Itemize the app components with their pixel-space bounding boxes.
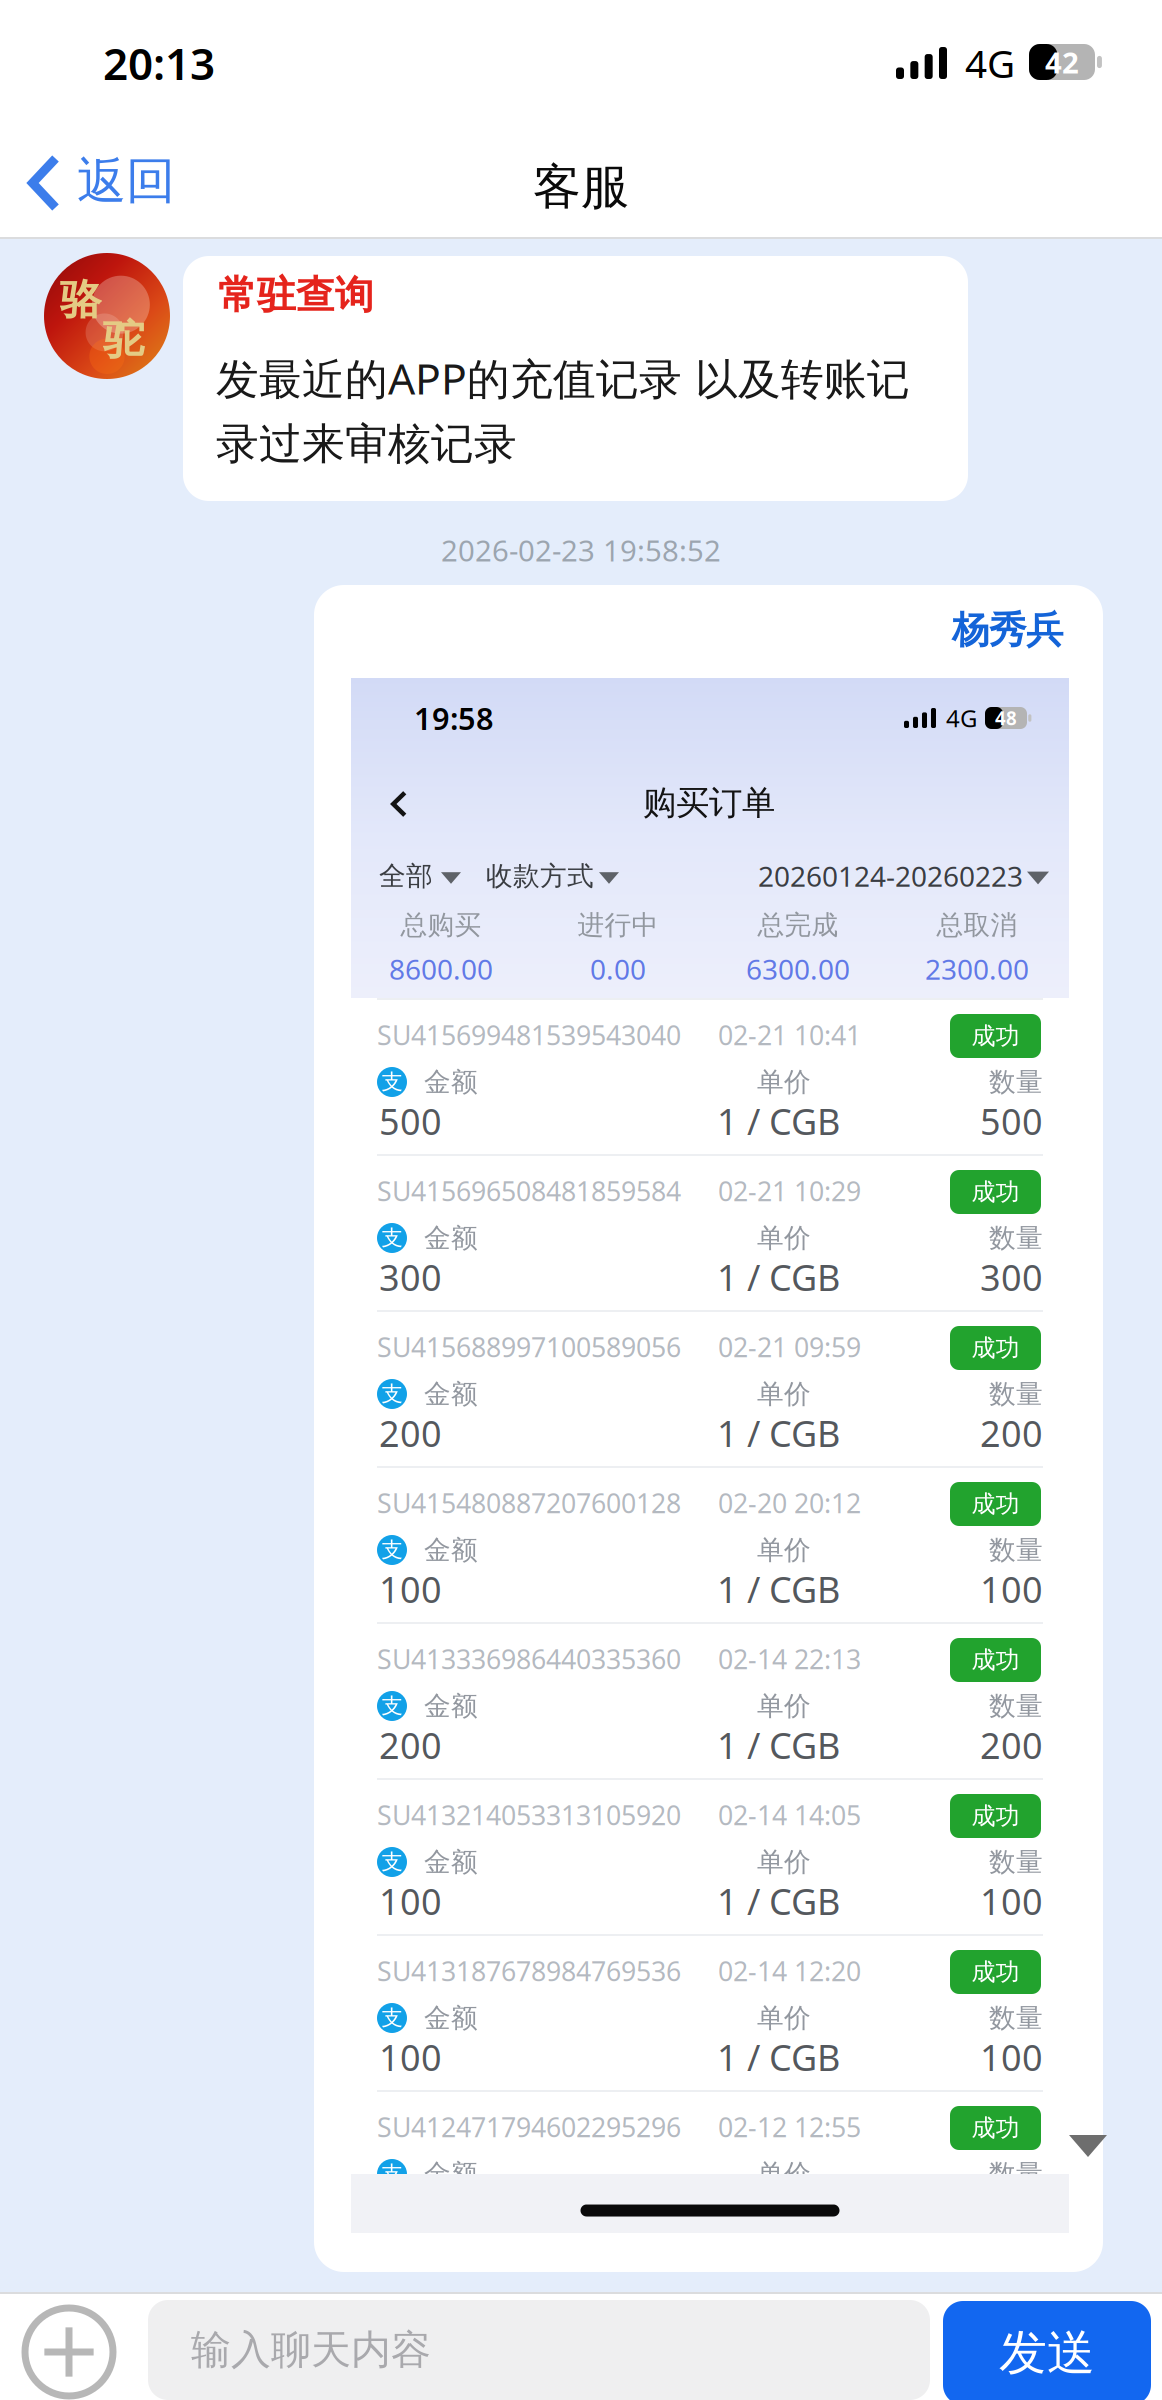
staticText: 数量 xyxy=(989,1378,1043,1410)
staticText: 02-14 12:20 xyxy=(718,1953,861,1989)
staticText: 300 xyxy=(379,1253,442,1301)
staticText: 100 xyxy=(980,2033,1043,2081)
staticText: 数量 xyxy=(989,1534,1043,1566)
staticText: SU415699481539543040 xyxy=(377,1017,681,1053)
staticText: 成功 xyxy=(971,2113,1019,2143)
staticText: 500 xyxy=(980,1097,1043,1145)
staticText: 金额 xyxy=(424,2002,478,2034)
staticText: 单价 xyxy=(757,1690,811,1722)
staticText: 02-12 12:55 xyxy=(718,2109,861,2145)
staticText: 100 xyxy=(379,1877,442,1925)
staticText: 金额 xyxy=(424,2158,478,2190)
staticText: 0.00 xyxy=(590,950,646,988)
staticText: 02-14 14:05 xyxy=(718,1797,861,1833)
staticText: 支 xyxy=(381,1537,402,1563)
staticText: 返回 xyxy=(77,151,175,211)
staticText: 20:13 xyxy=(103,34,215,92)
staticText: 成功 xyxy=(971,1021,1019,1051)
staticText: SU415696508481859584 xyxy=(377,1173,681,1209)
staticText: 48 xyxy=(995,706,1017,730)
staticText: 支 xyxy=(381,2161,402,2187)
staticText: 支 xyxy=(381,2005,402,2031)
staticText: 300 xyxy=(980,1253,1043,1301)
staticText: 数量 xyxy=(989,1690,1043,1722)
staticText: 发送 xyxy=(999,2323,1095,2382)
staticText: 金额 xyxy=(424,1846,478,1878)
button[interactable]: 发送 xyxy=(943,2301,1151,2400)
button[interactable]: 输入聊天内容 xyxy=(148,2300,930,2400)
staticText: 数量 xyxy=(989,2002,1043,2034)
staticText: 02-20 20:12 xyxy=(718,1485,861,1521)
button[interactable]: More xyxy=(9,2292,129,2400)
staticText: 20260124-20260223 xyxy=(758,857,1023,895)
staticText: 1 / CGB xyxy=(717,1097,840,1145)
staticText: 1 / CGB xyxy=(717,1253,840,1301)
staticText: 4G xyxy=(946,702,977,734)
staticText: 100 xyxy=(379,1565,442,1613)
staticText: 数量 xyxy=(989,1066,1043,1098)
staticText: 成功 xyxy=(971,1801,1019,1831)
staticText: 6300.00 xyxy=(746,950,850,988)
staticText: 数量 xyxy=(989,1222,1043,1254)
staticText: 1 / CGB xyxy=(717,1409,840,1457)
staticText: 4G xyxy=(965,37,1015,89)
staticText: 2026-02-23 19:58:52 xyxy=(441,530,721,569)
staticText: SU413214053313105920 xyxy=(377,1797,681,1833)
staticText: 杨秀兵 xyxy=(952,607,1063,653)
staticText: 购买订单 xyxy=(643,782,775,823)
staticText: 200 xyxy=(980,1409,1043,1457)
staticText: 驼 xyxy=(103,315,144,365)
staticText: 200 xyxy=(379,1409,442,1457)
staticText: 02-21 09:59 xyxy=(718,1329,861,1365)
staticText: SU413336986440335360 xyxy=(377,1641,681,1677)
staticText: 输入聊天内容 xyxy=(191,2325,431,2374)
staticText: 02-21 10:41 xyxy=(718,1017,861,1053)
staticText: 单价 xyxy=(757,2002,811,2034)
staticText: 100 xyxy=(980,2189,1043,2237)
staticText: 支 xyxy=(381,1693,402,1719)
staticText: 总取消 xyxy=(936,909,1017,941)
staticText: 全部 xyxy=(379,860,433,892)
staticText: 1 / CGB xyxy=(717,1721,840,1769)
staticText: 42 xyxy=(1045,42,1079,81)
staticText: 单价 xyxy=(757,1222,811,1254)
staticText: 19:58 xyxy=(414,698,494,738)
staticText: 成功 xyxy=(971,1177,1019,1207)
staticText: 100 xyxy=(980,1565,1043,1613)
staticText: 单价 xyxy=(757,2158,811,2190)
staticText: 进行中 xyxy=(577,909,658,941)
staticText: 成功 xyxy=(971,1333,1019,1363)
staticText: 单价 xyxy=(757,1534,811,1566)
staticText: 8600.00 xyxy=(389,950,493,988)
staticText: 成功 xyxy=(971,1645,1019,1675)
staticText: 单价 xyxy=(757,1066,811,1098)
staticText: 支 xyxy=(381,1849,402,1875)
staticText: 成功 xyxy=(971,1489,1019,1519)
staticText: 金额 xyxy=(424,1222,478,1254)
staticText: 总购买 xyxy=(400,909,481,941)
staticText: 金额 xyxy=(424,1534,478,1566)
staticText: 100 xyxy=(379,2189,442,2237)
staticText: 100 xyxy=(379,2033,442,2081)
staticText: 金额 xyxy=(424,1378,478,1410)
staticText: 金额 xyxy=(424,1066,478,1098)
staticText: 成功 xyxy=(971,1957,1019,1987)
staticText: 常驻查询 xyxy=(218,271,374,319)
staticText: 1 / CGB xyxy=(717,1877,840,1925)
staticText: 收款方式 xyxy=(486,860,594,892)
staticText: SU415480887207600128 xyxy=(377,1485,681,1521)
staticText: 单价 xyxy=(757,1846,811,1878)
staticText: 500 xyxy=(379,1097,442,1145)
staticText: 录过来审核记录 xyxy=(216,418,517,470)
button[interactable]: 返回 xyxy=(8,129,208,237)
staticText: SU413187678984769536 xyxy=(377,1953,681,1989)
staticText: 客服 xyxy=(533,157,629,216)
staticText: 200 xyxy=(379,1721,442,1769)
staticText: 单价 xyxy=(757,1378,811,1410)
staticText: SU412471794602295296 xyxy=(377,2109,681,2145)
staticText: 支 xyxy=(381,1069,402,1095)
staticText: 金额 xyxy=(424,1690,478,1722)
staticText: 骆 xyxy=(60,274,101,325)
staticText: 1 / CGB xyxy=(717,2189,840,2237)
staticText: 数量 xyxy=(989,2158,1043,2190)
